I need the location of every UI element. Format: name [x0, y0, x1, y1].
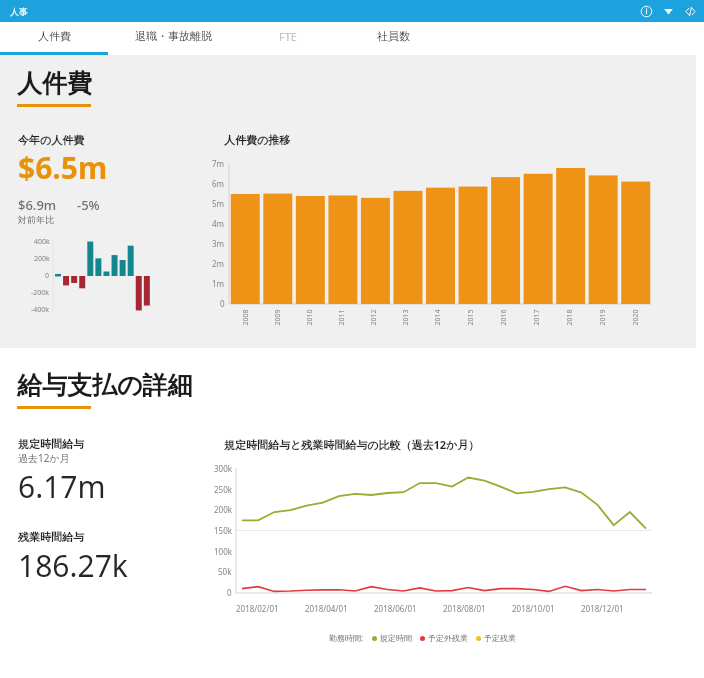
staticText: 2018/02/01 [236, 603, 279, 614]
staticText: 400k [34, 237, 50, 247]
staticText: 人事 [10, 6, 28, 17]
staticText: 人件費 [17, 68, 92, 99]
staticText: 0 [45, 271, 50, 281]
button[interactable]: 退職・事故離脱 [108, 22, 238, 55]
staticText: 2018 [564, 308, 574, 325]
staticText: 2008 [240, 308, 250, 325]
staticText: 人件費 [38, 29, 71, 43]
staticText: 2016 [498, 308, 508, 325]
staticText: -400k [31, 305, 50, 315]
staticText: 人件費の推移 [224, 133, 291, 147]
staticText: 対前年比 [18, 214, 54, 225]
staticText: $6.9m [18, 196, 57, 214]
staticText: 2011 [336, 308, 346, 325]
staticText: 186.27k [18, 545, 128, 586]
staticText: 2018/04/01 [305, 603, 348, 614]
staticText: 0 [227, 587, 232, 598]
staticText: 2020 [630, 308, 640, 325]
button[interactable]: Information [640, 5, 653, 18]
staticText: 2012 [368, 308, 378, 325]
staticText: 0 [220, 298, 225, 309]
button[interactable]: 社員数 [338, 22, 448, 55]
staticText: 給与支払の詳細 [17, 370, 193, 401]
staticText: 規定時間給与 [18, 437, 84, 451]
staticText: 200k [214, 504, 232, 515]
staticText: 3m [212, 238, 225, 249]
staticText: $6.5m [18, 147, 108, 188]
staticText: 予定外残業 [428, 633, 468, 643]
staticText: 2013 [400, 308, 410, 325]
staticText: 7m [212, 158, 225, 169]
staticText: 残業時間給与 [18, 530, 84, 544]
staticText: 2018/08/01 [443, 603, 486, 614]
staticText: 6.17m [18, 466, 106, 507]
staticText: 50k [218, 566, 232, 577]
staticText: 150k [214, 525, 232, 536]
staticText: 規定時間 [380, 633, 412, 643]
staticText: 2018/06/01 [374, 603, 417, 614]
staticText: 2m [212, 258, 225, 269]
staticText: 退職・事故離脱 [135, 29, 212, 43]
staticText: 過去12か月 [18, 451, 70, 465]
staticText: 2017 [531, 308, 541, 325]
staticText: 5m [212, 198, 225, 209]
staticText: FTE [279, 29, 297, 44]
staticText: 今年の人件費 [18, 133, 85, 147]
button[interactable]: View source code [684, 5, 697, 18]
staticText: 2010 [304, 308, 314, 325]
staticText: -200k [31, 288, 50, 298]
button[interactable]: FTE [238, 22, 338, 55]
staticText: 1m [212, 278, 225, 289]
staticText: 6m [212, 178, 225, 189]
staticText: 100k [214, 546, 232, 557]
staticText: 2018/10/01 [512, 603, 555, 614]
staticText: 2019 [597, 308, 607, 325]
button[interactable]: Filter [662, 5, 675, 18]
button[interactable]: 人件費 [0, 22, 108, 55]
staticText: 2014 [432, 308, 442, 325]
staticText: 予定残業 [484, 633, 516, 643]
staticText: 2015 [465, 308, 475, 325]
staticText: 社員数 [377, 29, 410, 43]
staticText: 2018/12/01 [581, 603, 624, 614]
staticText: 300k [214, 463, 232, 474]
staticText: 2009 [272, 308, 282, 325]
staticText: 200k [34, 254, 50, 264]
staticText: -5% [77, 196, 100, 214]
staticText: 250k [214, 484, 232, 495]
staticText: 勤務時間: [329, 632, 364, 643]
staticText: 4m [212, 218, 225, 229]
staticText: 規定時間給与と残業時間給与の比較（過去12か月） [224, 437, 480, 452]
